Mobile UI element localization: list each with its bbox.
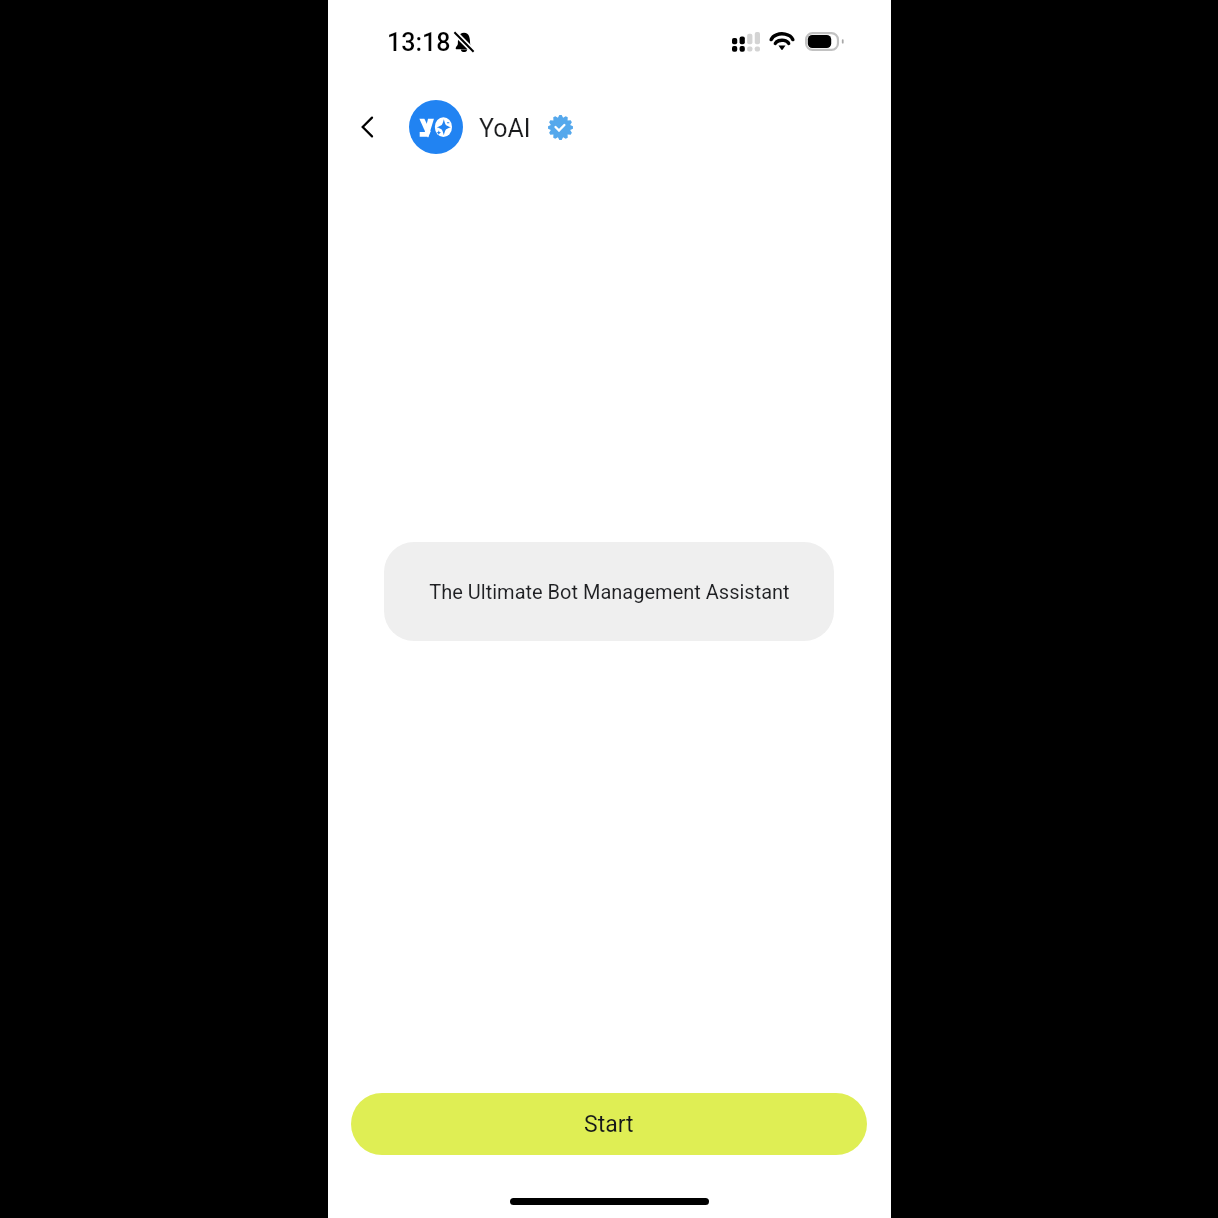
staticText: The Ultimate Bot Management Assistant [429,580,790,603]
staticText: YoAI [479,114,531,143]
button[interactable]: YoAI [409,98,573,156]
button[interactable]: Back [346,105,390,149]
staticText: 13:18 [387,28,451,57]
staticText: Start [584,1111,634,1138]
button[interactable]: Start [351,1093,867,1155]
